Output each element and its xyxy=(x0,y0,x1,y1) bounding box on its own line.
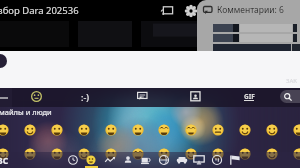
button[interactable]: Stickers xyxy=(137,91,148,102)
button[interactable]: Category 6 xyxy=(158,154,170,166)
button[interactable]: Emoji xyxy=(104,147,118,161)
button[interactable]: Category 7 xyxy=(176,154,188,166)
button[interactable]: Emoji xyxy=(265,123,279,137)
button[interactable]: Emoji xyxy=(265,147,279,161)
staticText: Комментарии: 6 xyxy=(217,4,284,16)
button[interactable]: Emoji xyxy=(23,123,37,137)
button[interactable]: Search emoji xyxy=(280,90,300,103)
button[interactable]: Cast to device xyxy=(160,4,174,18)
button[interactable]: Emoji xyxy=(0,147,10,161)
button[interactable]: Category 2 xyxy=(85,154,97,166)
button[interactable]: Emoji xyxy=(211,147,225,161)
button[interactable]: Emoji xyxy=(131,123,145,137)
staticText: збор Dara 202536 xyxy=(0,4,79,17)
staticText: GIF xyxy=(244,92,255,101)
button[interactable]: Emoji xyxy=(157,147,171,161)
button[interactable]: Category 4 xyxy=(122,154,134,166)
button[interactable]: Emoji xyxy=(23,147,37,161)
button[interactable]: Emoji xyxy=(50,123,64,137)
button[interactable]: Settings xyxy=(184,4,198,18)
button[interactable]: Emoji xyxy=(184,147,198,161)
button[interactable]: Category 1 xyxy=(67,154,79,166)
button[interactable]: Emoji xyxy=(50,147,64,161)
button[interactable]: Emoji xyxy=(104,123,118,137)
button[interactable]: Emoji xyxy=(157,123,171,137)
button[interactable]: Emoji xyxy=(292,123,300,137)
button[interactable]: Emoji xyxy=(31,91,42,102)
button[interactable]: Emoji xyxy=(211,123,225,137)
button[interactable]: Emoji xyxy=(238,123,252,137)
button[interactable]: Emoji xyxy=(0,123,10,137)
button[interactable]: Category 8 xyxy=(193,154,205,166)
button[interactable]: Back xyxy=(0,88,12,107)
button[interactable]: Emoji xyxy=(77,147,91,161)
button[interactable]: Emoji xyxy=(77,123,91,137)
staticText: майлы и люди xyxy=(0,107,52,117)
button[interactable]: Emoji xyxy=(131,147,145,161)
button[interactable]: Avatar stickers xyxy=(190,91,201,102)
button[interactable]: Category 3 xyxy=(104,154,116,166)
button[interactable]: GIF xyxy=(244,92,256,102)
button[interactable]: Emoticons xyxy=(81,91,95,102)
button[interactable]: Emoji xyxy=(292,147,300,161)
button[interactable]: Category 5 xyxy=(140,154,152,166)
button[interactable]: Emoji xyxy=(238,147,252,161)
button[interactable]: Category 9 xyxy=(211,154,223,166)
staticText: ЗАК xyxy=(286,77,298,85)
button[interactable]: Category 10 xyxy=(229,154,241,166)
button[interactable]: Emoji xyxy=(184,123,198,137)
staticText: BC xyxy=(0,155,9,167)
staticText: :-) xyxy=(81,91,90,102)
